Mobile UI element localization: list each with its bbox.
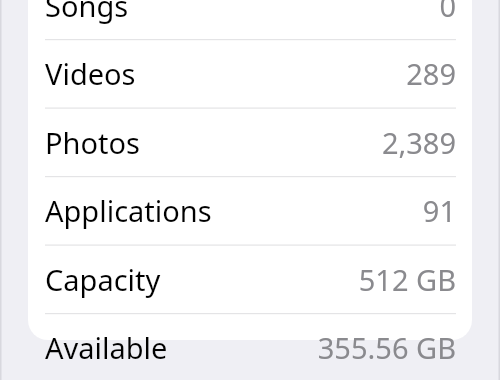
staticText: 355.56 GB — [317, 328, 456, 367]
button[interactable]: Available — [28, 313, 472, 380]
staticText: 2,389 — [381, 123, 456, 162]
staticText: 91 — [422, 191, 456, 230]
staticText: 0 — [439, 0, 456, 25]
button[interactable]: Photos — [28, 108, 472, 177]
button[interactable]: Applications — [28, 176, 472, 245]
staticText: 512 GB — [358, 260, 456, 299]
staticText: 289 — [406, 54, 456, 93]
staticText: Applications — [45, 191, 212, 230]
button[interactable]: Capacity — [28, 245, 472, 314]
staticText: Videos — [45, 54, 136, 93]
button[interactable]: Songs — [28, 0, 472, 40]
staticText: Capacity — [45, 260, 161, 299]
button[interactable]: Videos — [28, 39, 472, 108]
staticText: Photos — [45, 123, 140, 162]
staticText: Available — [45, 328, 168, 367]
staticText: Songs — [45, 0, 129, 25]
